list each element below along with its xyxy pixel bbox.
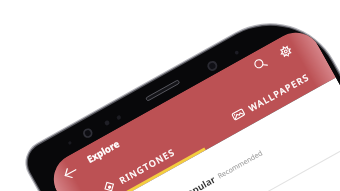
staticText: WALLPAPERS — [246, 70, 311, 114]
button[interactable]: Search — [246, 49, 276, 79]
staticText: Recommended — [216, 148, 265, 181]
button[interactable]: RINGTONES — [100, 143, 179, 191]
button[interactable]: Back — [56, 158, 85, 187]
button[interactable]: WALLPAPERS — [229, 68, 312, 124]
staticText: RINGTONES — [117, 145, 178, 186]
staticText: Popular — [179, 173, 218, 191]
button[interactable]: Settings — [271, 36, 301, 66]
staticText: Explore — [84, 137, 122, 166]
